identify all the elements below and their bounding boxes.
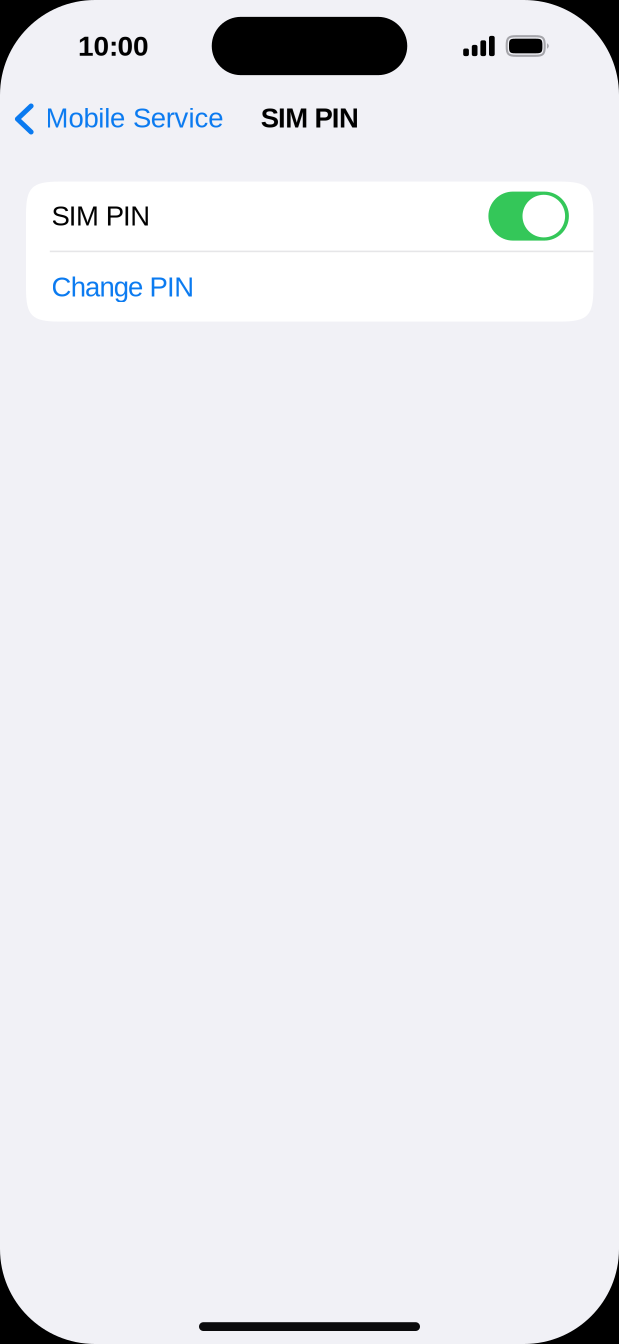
button[interactable]: Mobile Service xyxy=(0,94,223,144)
staticText: Change PIN xyxy=(51,272,194,302)
staticText: SIM PIN xyxy=(51,201,150,231)
staticText: SIM PIN xyxy=(261,103,359,133)
staticText: 10:00 xyxy=(78,30,149,62)
button[interactable]: Change PIN xyxy=(26,252,593,322)
staticText: Mobile Service xyxy=(46,103,223,133)
button[interactable]: SIM PIN xyxy=(26,182,593,251)
